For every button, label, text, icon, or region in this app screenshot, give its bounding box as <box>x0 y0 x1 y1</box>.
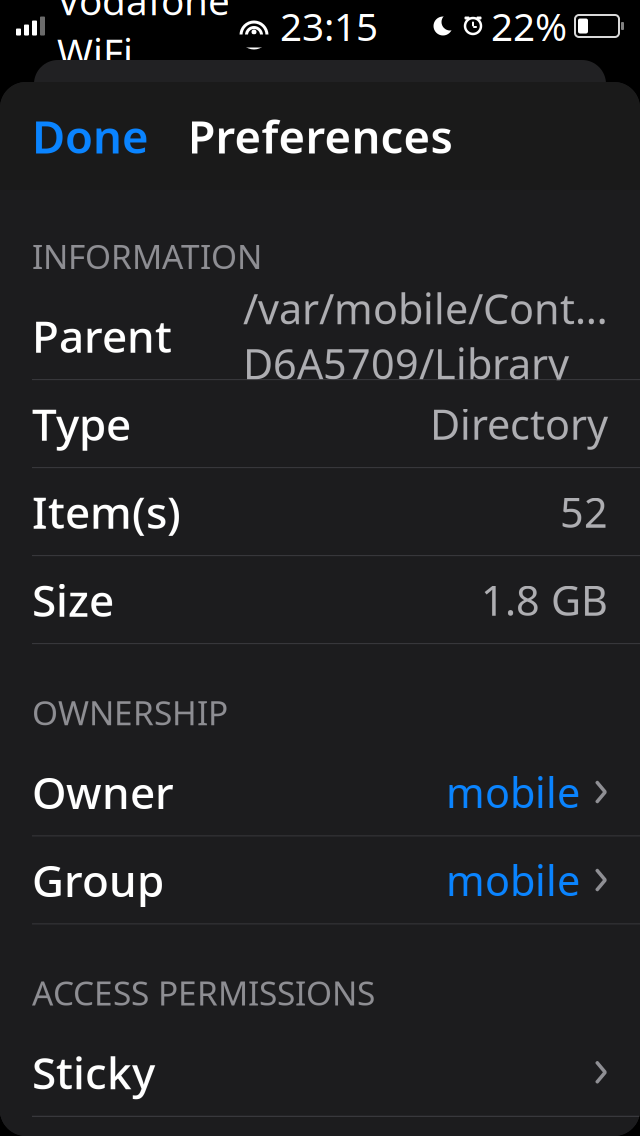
staticText: mobile <box>446 853 580 907</box>
staticText: Sticky <box>32 1043 155 1101</box>
staticText: Size <box>32 570 114 629</box>
staticText: 52 <box>560 484 608 539</box>
button[interactable]: Parent <box>0 292 640 380</box>
staticText: Owner <box>32 763 174 821</box>
button[interactable]: Sticky <box>0 1029 640 1117</box>
button[interactable]: Item(s) <box>0 468 640 556</box>
staticText: Parent <box>32 306 172 365</box>
staticText: Vodafone WiFi… <box>57 0 230 77</box>
button[interactable]: Owner <box>0 748 640 836</box>
staticText: OWNERSHIP <box>32 690 228 735</box>
staticText: Directory <box>430 396 608 451</box>
staticText: mobile <box>446 765 580 819</box>
staticText: INFORMATION <box>32 234 262 278</box>
staticText: Done <box>32 106 149 166</box>
staticText: Group <box>32 851 164 909</box>
staticText: Preferences <box>187 106 452 166</box>
button[interactable]: Done <box>24 96 157 176</box>
button[interactable]: Type <box>0 380 640 468</box>
staticText: ACCESS PERMISSIONS <box>32 970 375 1015</box>
staticText: Item(s) <box>32 482 181 541</box>
staticText: 1.8 GB <box>481 572 608 627</box>
staticText: 22% <box>491 0 567 52</box>
button[interactable]: Group <box>0 836 640 924</box>
staticText: 23:15 <box>280 0 378 52</box>
staticText: /var/mobile/Cont…D6A5709/Library <box>243 281 608 391</box>
staticText: Type <box>32 394 131 453</box>
button[interactable]: Size <box>0 556 640 644</box>
